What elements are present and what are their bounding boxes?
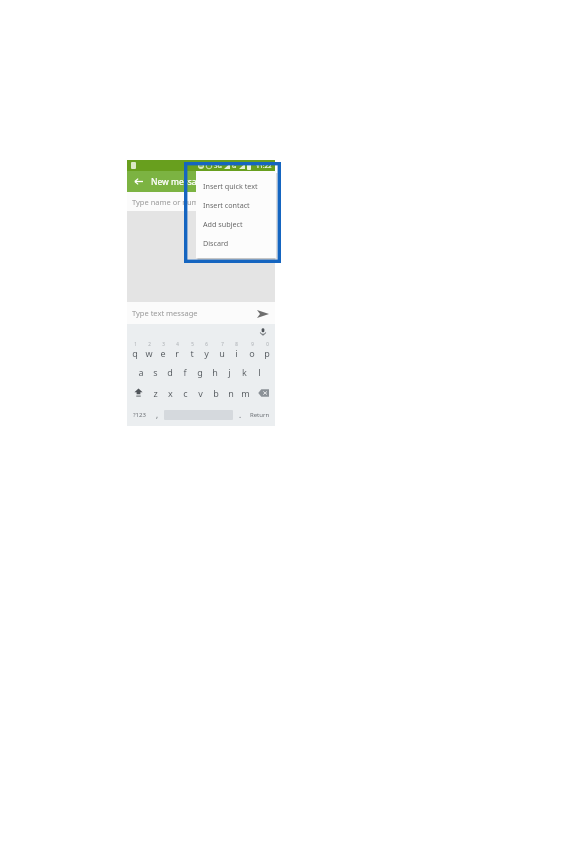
staticText: 3 bbox=[162, 341, 165, 347]
button[interactable]: , bbox=[151, 404, 163, 425]
button[interactable]: a bbox=[134, 361, 148, 382]
staticText: Type name or number bbox=[132, 197, 211, 207]
staticText: Return bbox=[250, 411, 270, 419]
button[interactable]: Return bbox=[246, 404, 274, 425]
staticText: s bbox=[153, 366, 158, 378]
button[interactable]: 7 bbox=[214, 339, 229, 361]
staticText: p bbox=[264, 347, 270, 359]
staticText: h bbox=[212, 366, 218, 378]
button[interactable]: g bbox=[192, 361, 207, 382]
button[interactable]: 1 bbox=[128, 339, 142, 361]
staticText: y bbox=[204, 347, 209, 359]
button[interactable]: h bbox=[207, 361, 222, 382]
button[interactable]: n bbox=[223, 382, 238, 403]
button[interactable]: 3 bbox=[156, 339, 170, 361]
button[interactable]: ?123 bbox=[128, 404, 151, 425]
staticText: x bbox=[168, 387, 173, 399]
button[interactable]: 8 bbox=[229, 339, 244, 361]
staticText: t bbox=[190, 347, 194, 359]
button[interactable]: l bbox=[252, 361, 267, 382]
button[interactable]: s bbox=[148, 361, 162, 382]
button[interactable]: Add subject bbox=[196, 214, 276, 233]
button[interactable]: Send bbox=[255, 306, 270, 321]
staticText: e bbox=[160, 347, 166, 359]
staticText: m bbox=[241, 387, 250, 399]
staticText: Discard bbox=[203, 238, 229, 248]
staticText: q bbox=[132, 347, 138, 359]
staticText: f bbox=[183, 366, 187, 378]
staticText: New message bbox=[151, 176, 207, 188]
button[interactable]: 5 bbox=[184, 339, 199, 361]
staticText: Add subject bbox=[203, 219, 243, 229]
staticText: a bbox=[138, 366, 144, 378]
button[interactable]: . bbox=[234, 404, 246, 425]
button[interactable]: f bbox=[177, 361, 192, 382]
button[interactable]: 9 bbox=[244, 339, 259, 361]
staticText: Type text message bbox=[132, 308, 198, 318]
button[interactable]: k bbox=[237, 361, 252, 382]
staticText: G bbox=[232, 162, 237, 170]
staticText: ?123 bbox=[133, 411, 146, 419]
staticText: 9 bbox=[251, 341, 254, 347]
staticText: 2 bbox=[148, 341, 151, 347]
staticText: 1 bbox=[134, 341, 137, 347]
button[interactable]: Type name or number bbox=[127, 192, 275, 211]
staticText: v bbox=[198, 387, 203, 399]
staticText: l bbox=[258, 366, 261, 378]
button[interactable]: m bbox=[238, 382, 253, 403]
staticText: z bbox=[153, 387, 158, 399]
button[interactable]: Voice input bbox=[257, 326, 269, 338]
staticText: n bbox=[228, 387, 234, 399]
button[interactable]: Insert contact bbox=[196, 195, 276, 214]
staticText: 4 bbox=[176, 341, 179, 347]
button[interactable]: c bbox=[178, 382, 193, 403]
staticText: k bbox=[242, 366, 247, 378]
staticText: 5 bbox=[191, 341, 194, 347]
staticText: o bbox=[249, 347, 255, 359]
staticText: d bbox=[167, 366, 173, 378]
button[interactable]: d bbox=[162, 361, 177, 382]
button[interactable]: z bbox=[148, 382, 163, 403]
staticText: w bbox=[145, 347, 153, 359]
button[interactable]: Discard bbox=[196, 233, 276, 252]
button[interactable]: Insert quick text bbox=[196, 176, 276, 195]
button[interactable]: 6 bbox=[199, 339, 214, 361]
staticText: b bbox=[213, 387, 219, 399]
staticText: Insert quick text bbox=[203, 181, 258, 191]
staticText: , bbox=[156, 409, 159, 420]
button[interactable]: x bbox=[163, 382, 178, 403]
button[interactable]: Backspace bbox=[253, 382, 274, 403]
button[interactable]: 4 bbox=[170, 339, 184, 361]
staticText: r bbox=[175, 347, 179, 359]
button[interactable]: v bbox=[193, 382, 208, 403]
staticText: 7 bbox=[221, 341, 224, 347]
staticText: 6 bbox=[205, 341, 208, 347]
button[interactable]: 2 bbox=[142, 339, 156, 361]
staticText: c bbox=[183, 387, 188, 399]
staticText: 8 bbox=[235, 341, 238, 347]
button[interactable]: Shift bbox=[128, 382, 148, 403]
staticText: . bbox=[239, 409, 242, 420]
button[interactable]: Navigate up bbox=[130, 173, 147, 190]
staticText: 0 bbox=[266, 341, 269, 347]
staticText: i bbox=[235, 347, 238, 359]
staticText: Insert contact bbox=[203, 200, 250, 210]
staticText: 3G bbox=[214, 162, 222, 170]
button[interactable]: 0 bbox=[259, 339, 274, 361]
staticText: g bbox=[197, 366, 203, 378]
button[interactable]: j bbox=[222, 361, 237, 382]
staticText: u bbox=[219, 347, 225, 359]
staticText: j bbox=[228, 366, 231, 378]
staticText: 11:22 bbox=[256, 162, 272, 170]
button[interactable]: b bbox=[208, 382, 223, 403]
